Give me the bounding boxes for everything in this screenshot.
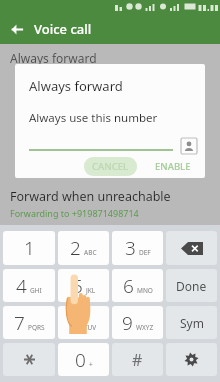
staticText: CANCEL <box>92 160 129 173</box>
staticText: ABC <box>84 248 97 257</box>
staticText: Always use this number <box>29 110 158 126</box>
staticText: 4 <box>16 273 27 299</box>
staticText: ENABLE <box>155 160 191 173</box>
button[interactable]: 5 <box>58 269 109 302</box>
button[interactable]: 4 <box>3 269 55 302</box>
staticText: Forward when unreachable <box>10 188 171 205</box>
button[interactable]: 7 <box>3 306 55 339</box>
staticText: # <box>132 349 143 371</box>
staticText: DEF <box>139 248 151 257</box>
staticText: 5 <box>72 273 83 299</box>
staticText: Done <box>176 278 207 294</box>
staticText: 9 <box>122 310 133 336</box>
button[interactable]: Back <box>0 14 34 44</box>
staticText: + <box>89 360 93 369</box>
staticText: 0 <box>75 347 86 373</box>
button[interactable]: Done <box>166 269 217 302</box>
button[interactable]: 8 <box>58 306 109 339</box>
staticText: Always forward <box>29 77 123 95</box>
staticText: Forwarding to +919871498714 <box>10 207 139 219</box>
button[interactable]: 2 <box>58 231 109 265</box>
button[interactable]: 3 <box>112 231 163 265</box>
staticText: Always forward <box>10 50 97 66</box>
staticText: GHI <box>30 286 42 295</box>
button[interactable]: Keyboard settings <box>166 343 217 376</box>
staticText: WXYZ <box>136 323 154 332</box>
staticText: JKL <box>86 286 96 295</box>
staticText: 3 <box>125 235 136 261</box>
staticText: 1 <box>24 235 35 261</box>
button[interactable]: 1 <box>3 231 55 265</box>
button[interactable]: Backspace <box>166 231 217 265</box>
staticText: Voice call <box>34 20 92 38</box>
staticText: 8 <box>70 310 81 336</box>
staticText: 2 <box>70 235 81 261</box>
button[interactable]: Sym <box>166 306 217 339</box>
button[interactable]: 9 <box>112 306 163 339</box>
button[interactable]: ENABLE <box>151 157 195 176</box>
button[interactable]: 0 <box>58 343 109 376</box>
staticText: TUV <box>84 323 97 332</box>
button[interactable]: Asterisk <box>3 343 55 376</box>
staticText: PQRS <box>28 323 45 332</box>
button[interactable]: Pick contact <box>181 138 197 154</box>
staticText: MNO <box>137 286 153 295</box>
button[interactable]: Pound <box>112 343 163 376</box>
button[interactable]: 6 <box>112 269 163 302</box>
button[interactable]: CANCEL <box>84 157 137 176</box>
staticText: Sym <box>180 315 204 331</box>
staticText: 7 <box>14 310 25 336</box>
staticText: 6 <box>123 273 134 299</box>
